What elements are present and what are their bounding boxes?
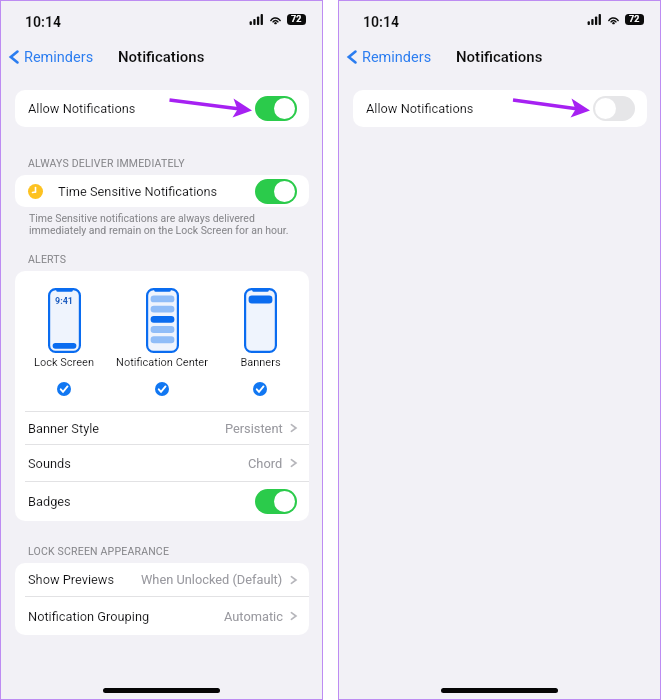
button[interactable]: Toggle on — [255, 96, 297, 121]
staticText: Allow Notifications — [28, 101, 136, 116]
button[interactable]: Time Sensitive Notifications — [15, 175, 309, 207]
button[interactable]: Banner Style — [15, 412, 309, 444]
staticText: Notifications — [456, 48, 543, 66]
staticText: 72 — [291, 14, 302, 25]
staticText: Persistent — [225, 421, 283, 436]
staticText: 9:41 — [55, 296, 74, 307]
staticText: 72 — [629, 14, 640, 25]
staticText: Reminders — [362, 49, 432, 66]
button[interactable]: Toggle off — [593, 96, 635, 121]
staticText: Banner Style — [28, 421, 100, 436]
staticText: Banners — [240, 356, 281, 369]
staticText: 10:14 — [363, 14, 400, 30]
other: Back — [347, 48, 357, 66]
staticText: Sounds — [28, 456, 71, 471]
staticText: Notifications — [118, 48, 205, 66]
button[interactable]: Sounds — [15, 445, 309, 481]
staticText: Lock Screen — [34, 356, 94, 369]
button[interactable]: Back — [346, 48, 436, 66]
button[interactable]: Show Previews — [15, 563, 309, 596]
staticText: Show Previews — [28, 572, 115, 587]
button[interactable]: Allow Notifications — [15, 90, 309, 127]
button[interactable]: Badges — [15, 482, 309, 521]
button[interactable]: Toggle on — [255, 489, 297, 514]
staticText: LOCK SCREEN APPEARANCE — [28, 545, 170, 557]
staticText: Notification Center — [116, 356, 208, 369]
staticText: Allow Notifications — [366, 101, 474, 116]
button[interactable]: Banners — [211, 288, 309, 396]
staticText: ALWAYS DELIVER IMMEDIATELY — [28, 157, 185, 169]
button[interactable]: 9:41 — [15, 288, 113, 396]
other: Back — [9, 48, 19, 66]
button[interactable]: Allow Notifications — [353, 90, 647, 127]
staticText: Automatic — [224, 609, 283, 624]
button[interactable]: Notification Grouping — [15, 597, 309, 635]
staticText: Badges — [28, 494, 71, 509]
staticText: Time Sensitive Notifications — [58, 184, 218, 199]
staticText: Chord — [248, 456, 283, 471]
staticText: 10:14 — [25, 14, 62, 30]
button[interactable]: Back — [8, 48, 98, 66]
button[interactable]: Notification Center — [113, 288, 211, 396]
staticText: Time Sensitive notifications are always … — [29, 212, 289, 236]
staticText: When Unlocked (Default) — [141, 572, 283, 587]
staticText: ALERTS — [28, 253, 67, 265]
button[interactable]: Toggle on — [255, 179, 297, 204]
staticText: Reminders — [24, 49, 94, 66]
staticText: Notification Grouping — [28, 609, 150, 624]
